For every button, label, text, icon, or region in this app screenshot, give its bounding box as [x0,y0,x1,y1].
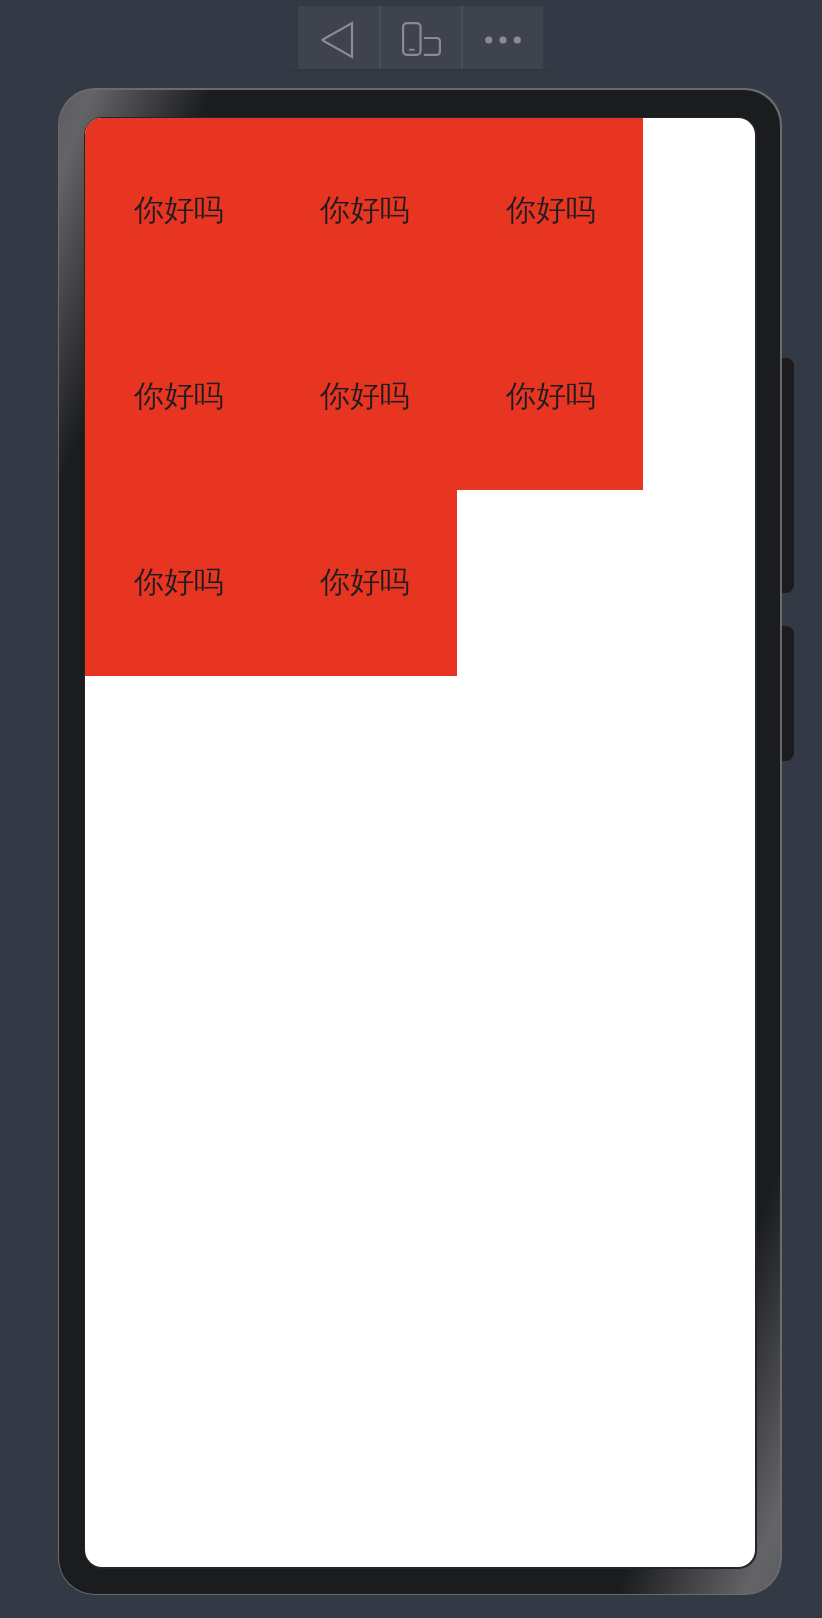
button[interactable]: 你好吗 [85,304,271,490]
button[interactable]: 你好吗 [457,118,643,304]
button[interactable]: Back [298,6,379,69]
staticText: 你好吗 [320,563,410,601]
staticText: 你好吗 [506,191,596,229]
staticText: 你好吗 [506,377,596,415]
button[interactable]: 你好吗 [85,490,271,676]
staticText: 你好吗 [320,377,410,415]
staticText: 你好吗 [134,191,224,229]
staticText: 你好吗 [320,191,410,229]
button[interactable]: More options [463,6,543,69]
button[interactable]: Rotate device [381,6,461,69]
button[interactable]: 你好吗 [85,118,271,304]
button[interactable]: 你好吗 [271,304,457,490]
button[interactable]: 你好吗 [271,490,457,676]
button[interactable]: 你好吗 [271,118,457,304]
staticText: 你好吗 [134,563,224,601]
staticText: 你好吗 [134,377,224,415]
button[interactable]: 你好吗 [457,304,643,490]
